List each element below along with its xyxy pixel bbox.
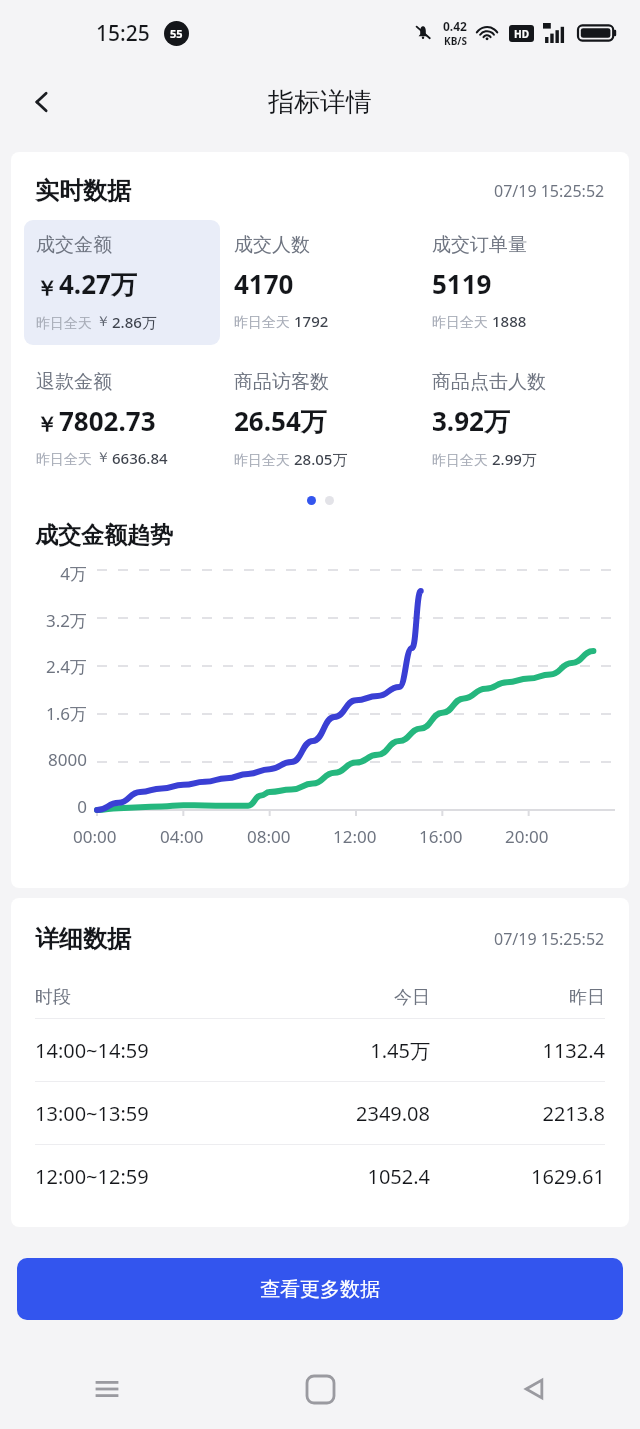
staticText: HD (514, 27, 529, 41)
staticText: 商品点击人数 (432, 370, 546, 394)
button[interactable]: 退款金额 (24, 357, 220, 481)
staticText: 4170 (234, 266, 294, 301)
staticText: 55 (170, 26, 183, 41)
staticText: 12:00~12:59 (35, 1163, 255, 1190)
staticText: 1888 (492, 311, 527, 331)
staticText: 详细数据 (35, 924, 131, 954)
button[interactable]: 查看更多数据 (17, 1258, 623, 1320)
button[interactable]: 12:00~12:59 (11, 1145, 629, 1207)
staticText: 1.45万 (255, 1037, 430, 1064)
staticText: 1792 (294, 311, 329, 331)
staticText: 指标详情 (268, 86, 372, 119)
staticText: 1132.4 (430, 1037, 605, 1064)
staticText: KB/S (444, 34, 467, 48)
button[interactable]: 商品访客数 (222, 357, 418, 482)
staticText: ￥ (96, 313, 110, 331)
staticText: ￥ (96, 449, 110, 467)
staticText: 成交金额趋势 (35, 521, 173, 550)
button[interactable]: 成交人数 (222, 220, 418, 344)
staticText: 07/19 15:25:52 (494, 180, 605, 202)
button[interactable]: 成交金额 (24, 220, 220, 345)
button[interactable]: Back (14, 74, 70, 130)
staticText: 成交人数 (234, 233, 310, 257)
staticText: 4.27万 (59, 266, 137, 302)
staticText: 退款金额 (36, 370, 112, 394)
button[interactable]: 商品点击人数 (420, 357, 616, 482)
staticText: 12:00 (333, 825, 377, 848)
staticText: 26.54万 (234, 403, 327, 439)
staticText: 2.86万 (112, 312, 157, 332)
staticText: 3.2万 (29, 609, 87, 632)
staticText: 2.99万 (492, 449, 537, 469)
button[interactable]: Back (427, 1349, 640, 1429)
staticText: 1629.61 (430, 1163, 605, 1190)
staticText: 0.42 (443, 18, 467, 34)
staticText: 08:00 (247, 825, 291, 848)
staticText: 04:00 (160, 825, 204, 848)
staticText: 3.92万 (432, 403, 510, 439)
staticText: 成交金额 (36, 233, 112, 257)
staticText: 今日 (255, 986, 430, 1009)
staticText: ￥ (36, 276, 57, 302)
staticText: 成交订单量 (432, 233, 527, 257)
staticText: 昨日全天 (432, 312, 492, 331)
staticText: 16:00 (419, 825, 463, 848)
staticText: 7802.73 (59, 403, 156, 438)
button[interactable]: Recent apps (0, 1349, 214, 1429)
staticText: 5119 (432, 266, 492, 301)
button[interactable]: Home (214, 1349, 427, 1429)
staticText: 昨日全天 (234, 312, 294, 331)
staticText: 昨日全天 (36, 313, 96, 332)
staticText: 昨日全天 (432, 450, 492, 469)
staticText: 昨日全天 (36, 449, 96, 468)
staticText: ￥ (36, 412, 57, 438)
staticText: 14:00~14:59 (35, 1037, 255, 1064)
staticText: 0 (29, 795, 87, 818)
staticText: 20:00 (505, 825, 549, 848)
staticText: 4万 (29, 562, 87, 585)
staticText: 2.4万 (29, 655, 87, 678)
staticText: 07/19 15:25:52 (494, 928, 605, 950)
staticText: 8000 (29, 748, 87, 771)
staticText: 实时数据 (35, 176, 131, 206)
button[interactable]: 时段 (11, 976, 629, 1018)
button[interactable]: 成交订单量 (420, 220, 616, 344)
staticText: 昨日全天 (234, 450, 294, 469)
staticText: 00:00 (73, 825, 117, 848)
button[interactable]: 14:00~14:59 (11, 1019, 629, 1081)
staticText: 28.05万 (294, 449, 348, 469)
staticText: 时段 (35, 986, 255, 1009)
staticText: 15:25 (96, 19, 150, 48)
staticText: 1052.4 (255, 1163, 430, 1190)
staticText: 1.6万 (29, 702, 87, 725)
button[interactable]: 13:00~13:59 (11, 1082, 629, 1144)
staticText: 13:00~13:59 (35, 1100, 255, 1127)
staticText: 昨日 (430, 986, 605, 1009)
staticText: 商品访客数 (234, 370, 329, 394)
staticText: 2349.08 (255, 1100, 430, 1127)
staticText: 2213.8 (430, 1100, 605, 1127)
staticText: 6636.84 (112, 448, 168, 468)
staticText: 查看更多数据 (260, 1277, 380, 1302)
